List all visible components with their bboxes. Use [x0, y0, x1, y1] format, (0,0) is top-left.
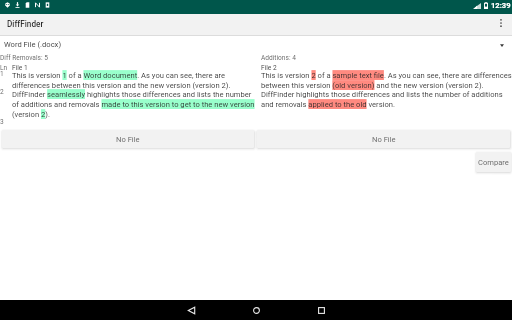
staticText: DiffFinder seamlessly highlights those d… — [12, 89, 256, 119]
staticText: 2 — [0, 88, 4, 96]
staticText: File 1 — [12, 64, 28, 72]
button[interactable]: No File — [257, 130, 510, 148]
button[interactable]: Word File (.docx) — [0, 36, 512, 52]
staticText: File 2 — [261, 64, 277, 72]
staticText: This is version 2 of a sample text file.… — [261, 70, 512, 90]
staticText: 1 — [0, 70, 4, 78]
staticText: No File — [372, 135, 396, 144]
staticText: Word File (.docx) — [4, 40, 62, 49]
staticText: 3 — [0, 118, 4, 126]
button[interactable]: Recent apps — [289, 300, 354, 320]
staticText: DiffFinder highlights those differences … — [261, 89, 512, 109]
staticText: Additions: 4 — [261, 54, 296, 62]
button[interactable]: No File — [2, 130, 254, 148]
button[interactable]: Compare — [476, 152, 511, 172]
button[interactable]: More options — [489, 14, 512, 35]
staticText: 12:39 — [491, 1, 511, 10]
staticText: DiffFinder — [7, 19, 44, 29]
button[interactable]: Back — [159, 300, 224, 320]
staticText: Compare — [478, 158, 509, 167]
staticText: Ln — [0, 64, 8, 72]
button[interactable]: Home — [224, 300, 289, 320]
staticText: No File — [116, 135, 140, 144]
staticText: This is version 1 of a Word document. As… — [12, 70, 256, 90]
staticText: Diff Removals: 5 — [0, 54, 48, 62]
